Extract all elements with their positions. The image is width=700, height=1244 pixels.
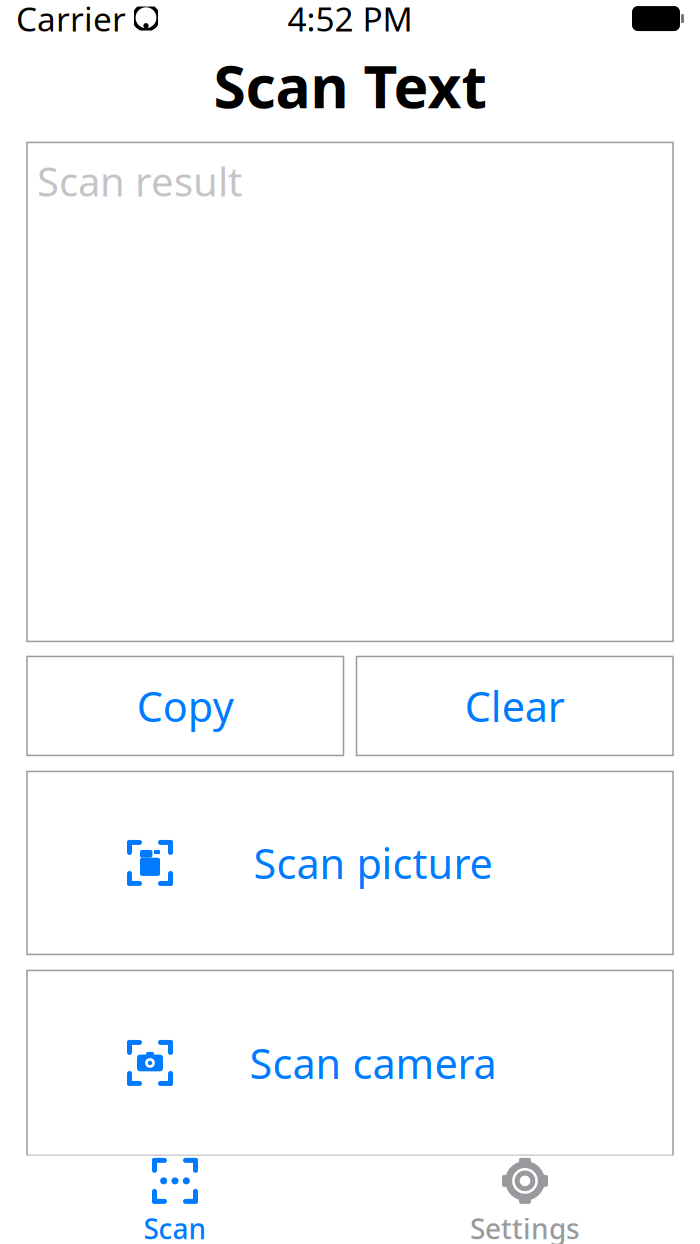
staticText: Carrier — [16, 0, 126, 41]
staticText: Copy — [137, 678, 234, 733]
staticText: 4:52 PM — [287, 0, 412, 41]
button[interactable]: Scan picture — [27, 771, 673, 954]
button[interactable]: Clear — [356, 656, 673, 755]
staticText: Scan Text — [213, 46, 486, 124]
staticText: Scan picture — [253, 835, 492, 890]
staticText: Clear — [465, 678, 565, 733]
staticText: Scan — [143, 1210, 206, 1244]
button[interactable]: Scan — [0, 1159, 350, 1244]
staticText: Scan result — [37, 154, 242, 208]
button[interactable]: Settings — [350, 1159, 700, 1244]
staticText: Scan camera — [249, 1035, 496, 1090]
staticText: Settings — [470, 1210, 580, 1244]
button[interactable]: Copy — [27, 656, 343, 755]
button[interactable]: Scan camera — [27, 970, 673, 1155]
